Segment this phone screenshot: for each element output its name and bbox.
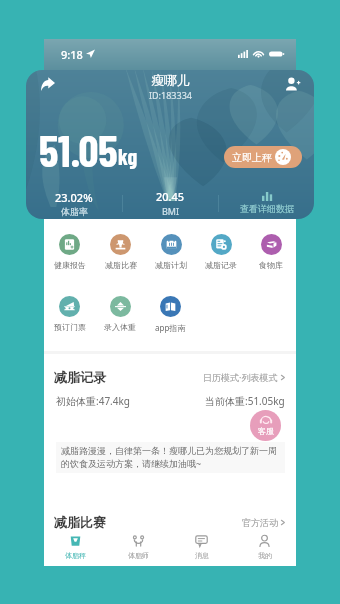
staticText: 初始体重:47.4kg (56, 394, 131, 408)
staticText: 23.02% (55, 190, 93, 205)
staticText: kg (118, 143, 138, 169)
staticText: 减脂比赛 (105, 260, 137, 270)
button[interactable]: 食物库 (246, 234, 296, 270)
button[interactable]: app指南 (145, 296, 195, 333)
button[interactable]: 消息 (170, 530, 233, 564)
button[interactable]: 体脂秤 (44, 530, 107, 564)
staticText: 客服 (258, 426, 274, 436)
staticText: 体脂秤 (65, 551, 86, 560)
staticText: 体脂率 (61, 206, 88, 217)
staticText: 减脂计划 (155, 260, 187, 270)
staticText: ID:183334 (149, 89, 192, 101)
staticText: 预订门票 (54, 322, 86, 332)
staticText: app指南 (155, 322, 186, 333)
staticText: 减脂路漫漫，自律第一条！瘦哪儿已为您规划了新一周的饮食及运动方案，请继续加油哦~ (61, 445, 280, 470)
button[interactable]: Add friend (282, 73, 304, 95)
button[interactable]: 20.45 (123, 189, 218, 217)
staticText: 20.45 (156, 189, 185, 204)
button[interactable]: 23.02% (26, 190, 122, 217)
staticText: 食物库 (259, 260, 283, 270)
staticText: 录入体重 (104, 322, 136, 332)
button[interactable]: 我的 (233, 530, 296, 564)
staticText: 官方活动 (242, 517, 278, 528)
staticText: 减脂记录 (205, 260, 237, 270)
staticText: 9:18 (61, 47, 83, 62)
button[interactable]: Share (37, 73, 59, 95)
staticText: 瘦哪儿 (151, 72, 190, 88)
staticText: 查看详细数据 (240, 203, 294, 214)
staticText: 51.05 (39, 123, 118, 176)
staticText: 健康报告 (54, 260, 86, 270)
button[interactable]: 官方活动 (242, 517, 285, 528)
staticText: 体脂师 (128, 551, 149, 560)
staticText: BMI (162, 205, 180, 217)
button[interactable]: 减脂比赛 (95, 234, 146, 270)
staticText: 减脂比赛 (54, 514, 106, 530)
button[interactable]: 健康报告 (44, 234, 95, 270)
staticText: 减脂记录 (54, 369, 106, 385)
button[interactable]: 立即上秤 (224, 146, 302, 168)
button[interactable]: 预订门票 (44, 296, 95, 332)
button[interactable]: 减脂计划 (146, 234, 196, 270)
button[interactable]: 录入体重 (95, 296, 145, 332)
staticText: 当前体重:51.05kg (205, 394, 285, 408)
button[interactable]: 查看详细数据 (240, 192, 294, 214)
staticText: 立即上秤 (232, 151, 272, 164)
button[interactable]: 体脂师 (107, 530, 170, 564)
staticText: 消息 (195, 551, 209, 560)
button[interactable]: 减脂记录 (196, 234, 246, 270)
staticText: 我的 (258, 551, 272, 560)
button[interactable]: 客服 (250, 410, 281, 441)
button[interactable]: 日历模式·列表模式 (203, 371, 285, 383)
staticText: 日历模式·列表模式 (203, 371, 278, 383)
